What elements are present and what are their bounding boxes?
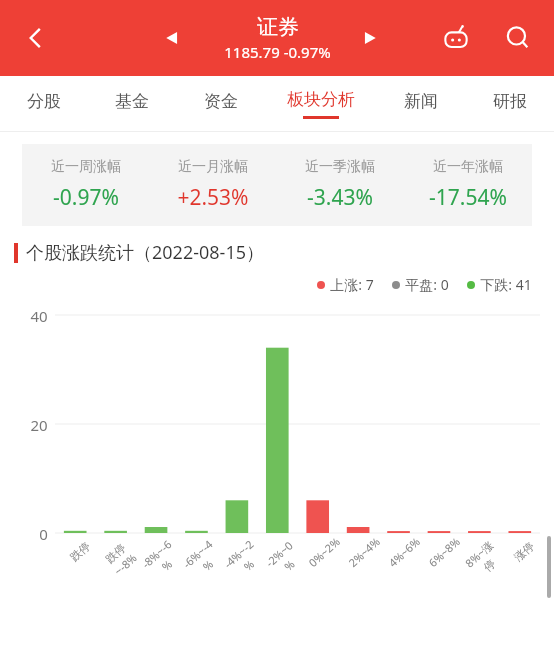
staticText: 2%~4% [345,534,383,570]
staticText: -6%~-4% [177,535,228,584]
staticText: 近一月涨幅 [178,158,248,176]
staticText: 涨停 [511,539,537,564]
staticText: 板块分析 [287,89,355,110]
staticText: -2%~0% [259,535,309,584]
staticText: 4%~6% [385,534,423,570]
staticText: +2.53% [177,183,249,212]
button[interactable]: 分股 [0,76,88,132]
staticText: 0 [39,524,48,544]
button[interactable]: 近一季涨幅 [276,158,404,212]
staticText: -0.97% [53,183,119,212]
staticText: 20 [30,415,48,435]
staticText: 分股 [27,91,61,112]
button[interactable]: 近一年涨幅 [404,158,532,212]
button[interactable]: 新闻 [376,76,465,132]
staticText: 上涨: 7 [330,275,374,294]
staticText: 个股涨跌统计（2022-08-15） [26,240,264,265]
staticText: 40 [30,306,48,326]
staticText: 基金 [115,91,149,112]
button[interactable]: 基金 [88,76,176,132]
button[interactable]: Next [350,18,390,58]
staticText: 8%~涨停 [459,535,509,584]
button[interactable]: Search [496,16,540,60]
button[interactable]: Assistant [434,16,478,60]
staticText: 研报 [493,91,527,112]
staticText: 近一周涨幅 [51,158,121,176]
staticText: 下跌: 41 [480,275,532,294]
staticText: 平盘: 0 [405,275,449,294]
staticText: 近一年涨幅 [433,158,503,176]
staticText: 近一季涨幅 [305,158,375,176]
staticText: 跌停 [67,539,93,564]
staticText: 0%~2% [305,534,343,570]
button[interactable]: 研报 [465,76,554,132]
button[interactable]: 近一月涨幅 [149,158,276,212]
staticText: 跌停~-8% [96,534,145,583]
staticText: 6%~8% [425,534,463,570]
button[interactable]: Previous [152,18,192,58]
button[interactable]: Back [14,16,58,60]
staticText: -3.43% [307,183,373,212]
staticText: 1185.79 -0.97% [224,42,331,62]
staticText: -17.54% [429,183,507,212]
button[interactable]: 资金 [176,76,265,132]
button[interactable]: 板块分析 [265,76,376,132]
staticText: 证券 [257,14,299,40]
staticText: 新闻 [404,91,438,112]
staticText: -8%~-6% [136,535,187,584]
staticText: -4%~-2% [218,535,269,584]
staticText: 资金 [204,91,238,112]
button[interactable]: 近一周涨幅 [22,158,149,212]
